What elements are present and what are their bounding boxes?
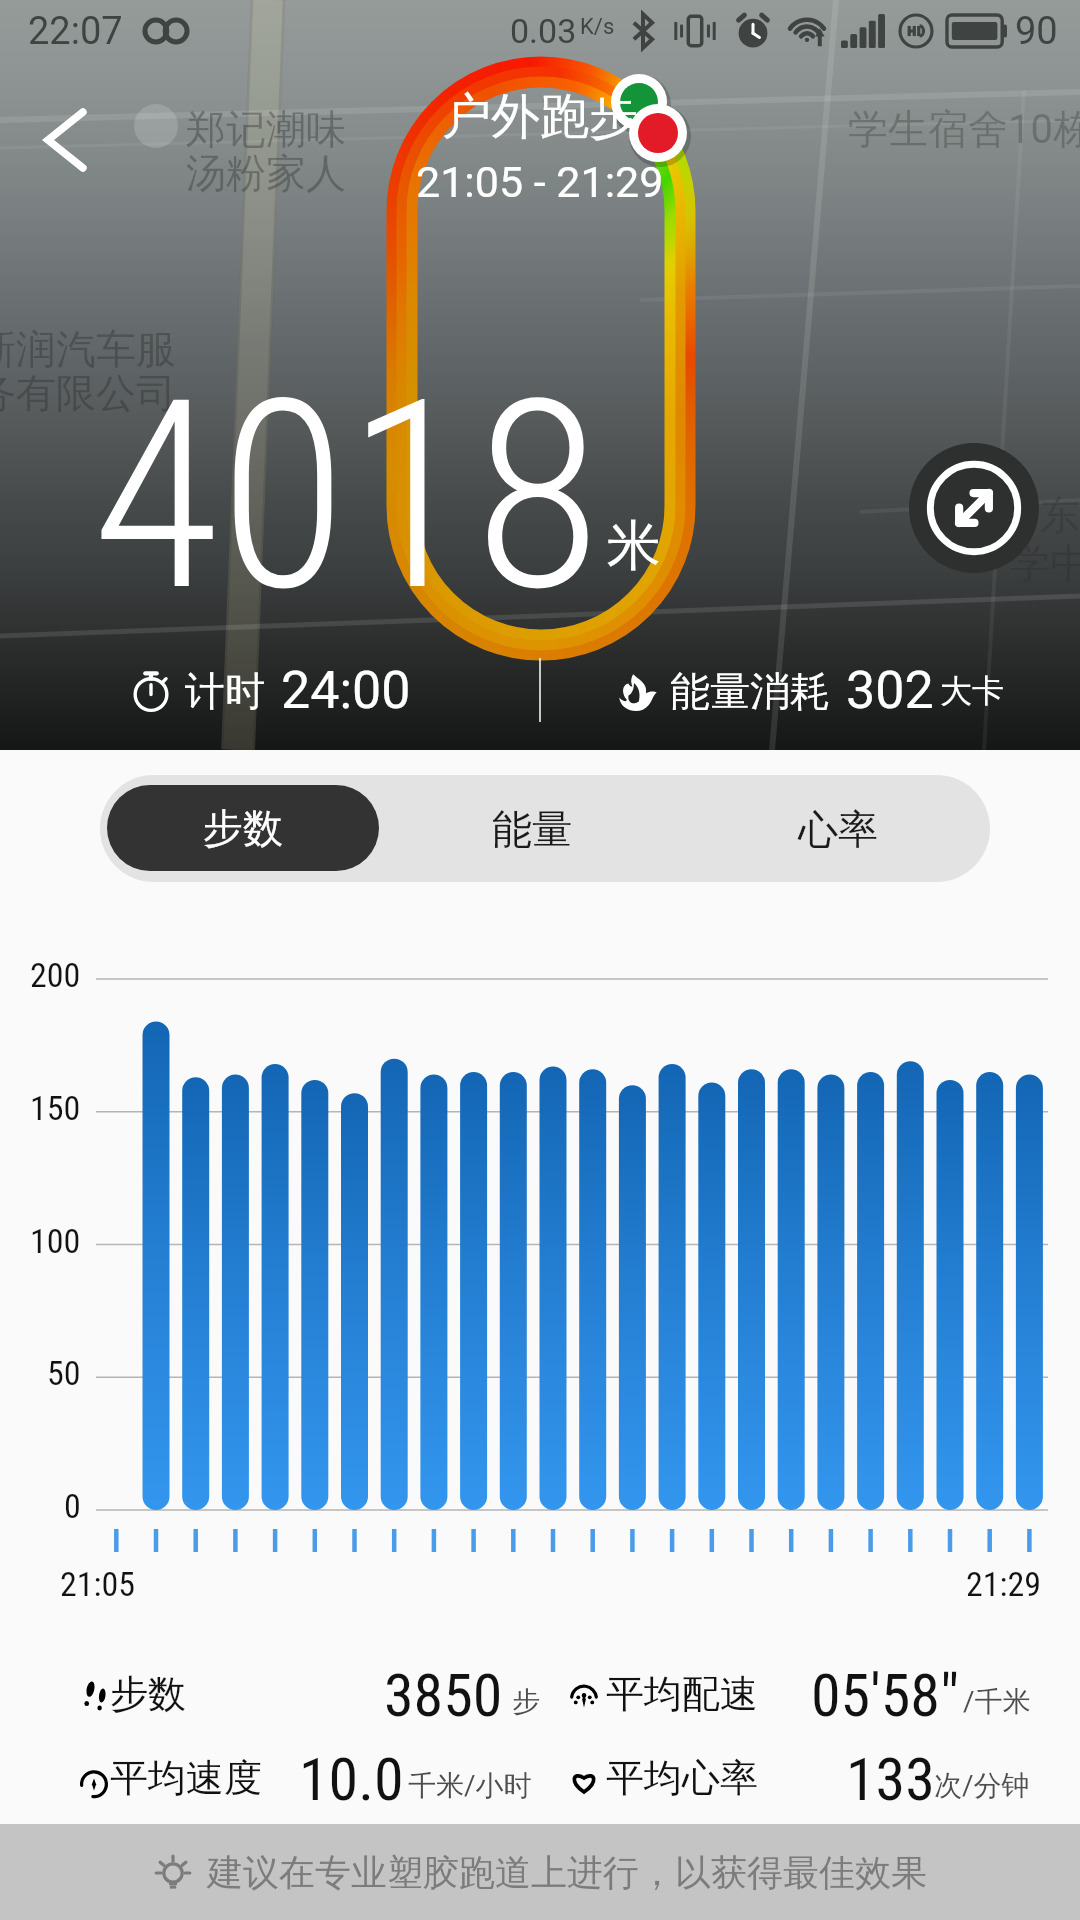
staticText: 次/分钟 bbox=[934, 1768, 1030, 1803]
staticText: 0.03 bbox=[510, 11, 577, 51]
staticText: 能量 bbox=[492, 804, 572, 854]
staticText: 步 bbox=[512, 1684, 540, 1719]
staticText: 学中 bbox=[1010, 538, 1080, 588]
staticText: 200 bbox=[30, 955, 81, 995]
staticText: 郑记潮味 bbox=[186, 104, 346, 154]
staticText: 平均速度 bbox=[110, 1754, 262, 1802]
button[interactable]: Expand map bbox=[909, 443, 1039, 573]
staticText: 学生宿舍10栋 bbox=[848, 104, 1080, 154]
staticText: 24:00 bbox=[281, 660, 411, 721]
staticText: 步数 bbox=[110, 1670, 186, 1718]
button[interactable]: 心率 bbox=[685, 775, 990, 882]
button[interactable]: 能量 bbox=[379, 775, 685, 882]
staticText: 21:05 bbox=[60, 1564, 136, 1604]
staticText: 平均心率 bbox=[606, 1754, 758, 1802]
staticText: 心率 bbox=[798, 804, 878, 854]
staticText: 务有限公司 bbox=[0, 368, 176, 418]
staticText: 21:29 bbox=[966, 1564, 1042, 1604]
staticText: 千米/小时 bbox=[408, 1768, 532, 1803]
staticText: 步数 bbox=[203, 803, 283, 853]
staticText: 302 bbox=[846, 660, 934, 721]
staticText: 户外跑步 bbox=[442, 86, 638, 148]
staticText: 0 bbox=[64, 1486, 81, 1526]
staticText: 汤粉家人 bbox=[186, 148, 346, 198]
button[interactable]: 步数 bbox=[107, 785, 379, 871]
staticText: 50 bbox=[47, 1353, 81, 1393]
staticText: 计时 bbox=[185, 666, 265, 716]
staticText: 大卡 bbox=[940, 671, 1004, 711]
staticText: 21:05 - 21:29 bbox=[416, 157, 664, 207]
staticText: 10.0 bbox=[299, 1744, 404, 1814]
staticText: 平均配速 bbox=[606, 1670, 758, 1718]
staticText: 建议在专业塑胶跑道上进行，以获得最佳效果 bbox=[207, 1850, 927, 1895]
staticText: 新润汽车服 bbox=[0, 324, 176, 374]
staticText: K/s bbox=[580, 14, 615, 40]
staticText: 133 bbox=[846, 1744, 935, 1814]
staticText: 150 bbox=[30, 1088, 81, 1128]
staticText: 米 bbox=[607, 512, 661, 580]
button[interactable]: Back bbox=[20, 95, 110, 185]
staticText: 05'58" bbox=[811, 1660, 960, 1730]
staticText: 90 bbox=[1015, 9, 1058, 54]
staticText: /千米 bbox=[963, 1684, 1031, 1719]
staticText: 4018 bbox=[92, 343, 602, 650]
staticText: 东 bbox=[1040, 490, 1080, 540]
staticText: 22:07 bbox=[28, 9, 123, 54]
staticText: 能量消耗 bbox=[670, 666, 830, 716]
staticText: 100 bbox=[30, 1221, 81, 1261]
staticText: 3850 bbox=[384, 1660, 503, 1730]
